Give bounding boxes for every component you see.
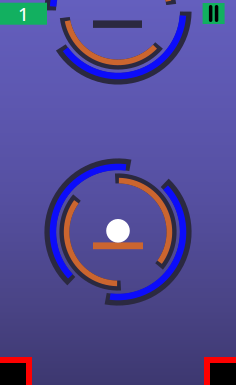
staticText: 1 (18, 1, 29, 26)
button[interactable]: Rotate right (204, 357, 236, 385)
button[interactable]: Rotate left (0, 357, 32, 385)
button[interactable]: Pause (203, 3, 225, 24)
